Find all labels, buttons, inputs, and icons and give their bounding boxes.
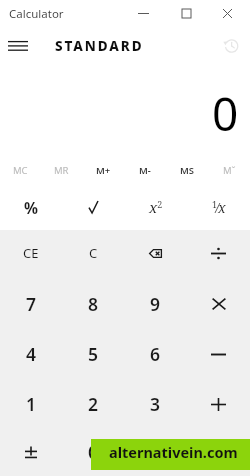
staticText: 2 xyxy=(88,392,99,416)
staticText: MR xyxy=(54,164,69,177)
button[interactable]: M- xyxy=(124,157,166,184)
button[interactable]: Equals xyxy=(187,428,250,476)
button[interactable] xyxy=(62,184,124,230)
staticText: CE xyxy=(23,244,39,262)
button[interactable]: M+ xyxy=(82,157,124,184)
button[interactable]: Divide xyxy=(187,229,250,277)
staticText: M- xyxy=(139,164,151,177)
button[interactable]: % xyxy=(0,184,62,230)
button[interactable]: Backspace xyxy=(124,229,187,277)
button[interactable]: 2 xyxy=(62,380,124,428)
button[interactable]: Open Navigation xyxy=(8,28,38,64)
staticText: MC xyxy=(13,164,28,177)
staticText: 5 xyxy=(88,342,99,366)
button[interactable]: x2 xyxy=(124,184,187,230)
staticText: Calculator xyxy=(9,6,64,22)
button[interactable]: 8 xyxy=(62,280,124,328)
button[interactable]: 7 xyxy=(0,280,62,328)
button[interactable]: History xyxy=(212,28,250,64)
staticText: 9 xyxy=(150,292,161,316)
staticText: 1 xyxy=(26,392,37,416)
button[interactable]: Multiply xyxy=(187,280,250,328)
button[interactable]: Plus minus xyxy=(0,428,62,476)
staticText: 6 xyxy=(150,342,161,366)
staticText: M+ xyxy=(96,164,111,177)
button[interactable]: Maximize xyxy=(172,0,200,26)
staticText: C xyxy=(89,244,98,262)
button[interactable]: . xyxy=(124,428,187,476)
button[interactable]: 0 xyxy=(62,428,124,476)
staticText: 3 xyxy=(150,392,161,416)
button[interactable]: 6 xyxy=(124,330,187,378)
staticText: MS xyxy=(180,164,195,177)
button[interactable]: C xyxy=(62,229,124,277)
button[interactable]: Plus xyxy=(187,380,250,428)
staticText: 0 xyxy=(88,440,99,464)
button[interactable]: Minimize xyxy=(129,0,157,26)
staticText: Mˇ xyxy=(223,164,236,177)
button[interactable]: MC xyxy=(0,157,41,184)
staticText: 8 xyxy=(88,292,99,316)
staticText: x2 xyxy=(149,197,163,217)
button[interactable]: CE xyxy=(0,229,62,277)
button[interactable]: 5 xyxy=(62,330,124,378)
button[interactable]: 1 xyxy=(0,380,62,428)
button[interactable]: Mˇ xyxy=(208,157,250,184)
button[interactable]: MR xyxy=(41,157,82,184)
button[interactable]: 4 xyxy=(0,330,62,378)
staticText: alternativein.com xyxy=(109,442,238,462)
button[interactable]: 1⁄x xyxy=(187,184,250,230)
staticText: STANDARD xyxy=(55,37,144,55)
staticText: 0 xyxy=(212,82,239,145)
button[interactable]: 3 xyxy=(124,380,187,428)
staticText: % xyxy=(24,197,38,218)
staticText: 4 xyxy=(26,342,37,366)
staticText: 1⁄x xyxy=(212,198,226,217)
staticText: . xyxy=(153,440,158,464)
button[interactable]: 9 xyxy=(124,280,187,328)
button[interactable]: Minus xyxy=(187,330,250,378)
button[interactable]: MS xyxy=(166,157,208,184)
staticText: 7 xyxy=(26,292,37,316)
button[interactable]: Close xyxy=(213,0,241,26)
